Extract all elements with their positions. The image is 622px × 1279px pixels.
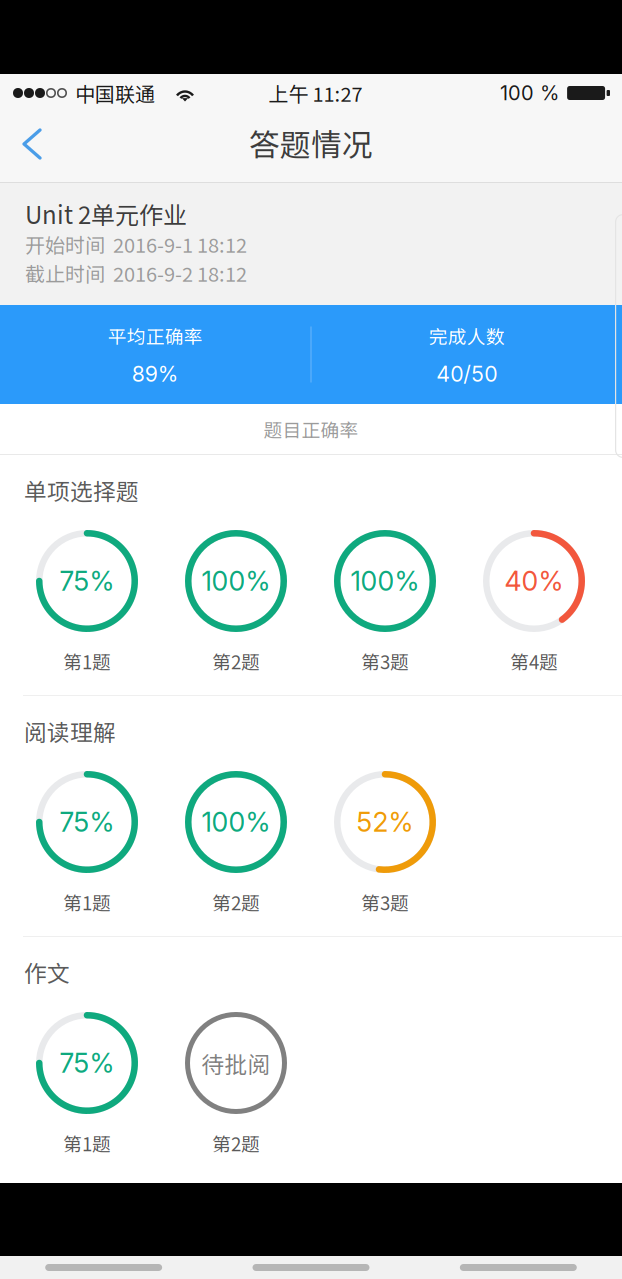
staticText: 第3题 xyxy=(361,647,409,674)
staticText: 100 % xyxy=(500,81,559,105)
button[interactable]: 待批阅 xyxy=(185,1012,287,1155)
button[interactable]: 75% xyxy=(36,1012,138,1155)
button[interactable]: 100% xyxy=(185,771,287,914)
staticText: 题目正确率 xyxy=(263,415,358,442)
staticText: 75% xyxy=(59,565,114,597)
staticText: 75% xyxy=(59,1047,114,1079)
staticText: 上午 11:27 xyxy=(268,78,362,107)
staticText: 单项选择题 xyxy=(24,474,139,506)
staticText: 40% xyxy=(504,565,563,597)
staticText: 答题情况 xyxy=(249,121,373,165)
staticText: 作文 xyxy=(24,956,70,988)
staticText: 40/50 xyxy=(436,361,497,387)
staticText: 截止时间 2016-9-2 18:12 xyxy=(25,258,247,287)
staticText: 第2题 xyxy=(212,647,260,674)
staticText: 89% xyxy=(132,361,179,387)
button[interactable]: 100% xyxy=(185,530,287,673)
staticText: 阅读理解 xyxy=(24,715,116,747)
staticText: 100% xyxy=(201,806,270,838)
staticText: 第2题 xyxy=(212,1129,260,1156)
staticText: 100% xyxy=(201,565,270,597)
staticText: 75% xyxy=(59,806,114,838)
staticText: 第1题 xyxy=(63,888,111,915)
staticText: 100% xyxy=(350,565,419,597)
staticText: 第2题 xyxy=(212,888,260,915)
button[interactable]: 75% xyxy=(36,530,138,673)
staticText: 第3题 xyxy=(361,888,409,915)
staticText: 完成人数 xyxy=(429,322,505,349)
button[interactable]: 75% xyxy=(36,771,138,914)
staticText: 待批阅 xyxy=(201,1047,270,1079)
staticText: 52% xyxy=(356,806,413,838)
staticText: 第1题 xyxy=(63,1129,111,1156)
button[interactable]: 40% xyxy=(483,530,585,673)
staticText: 第4题 xyxy=(510,647,558,674)
button[interactable]: Back xyxy=(0,126,62,168)
staticText: 第1题 xyxy=(63,647,111,674)
button[interactable]: 100% xyxy=(334,530,436,673)
staticText: 开始时间 2016-9-1 18:12 xyxy=(25,229,247,258)
staticText: 平均正确率 xyxy=(108,322,203,349)
button[interactable]: 52% xyxy=(334,771,436,914)
staticText: 中国联通 xyxy=(75,78,155,107)
staticText: Unit 2单元作业 xyxy=(25,196,187,231)
